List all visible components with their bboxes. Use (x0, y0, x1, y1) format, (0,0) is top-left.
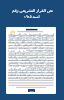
staticText: إن رئيس الجمهورية بناء على أحكام الدستور… (8, 32, 54, 80)
button[interactable]: إن رئيس الجمهورية بناء على أحكام الدستور… (6, 27, 56, 94)
staticText: نص القرار التشريعي رقم (12, 8, 53, 13)
staticText: لسنة ١٩٨٥ (24, 14, 40, 19)
button[interactable]: تحميل (28, 89, 35, 92)
staticText: تحميل (29, 90, 34, 92)
